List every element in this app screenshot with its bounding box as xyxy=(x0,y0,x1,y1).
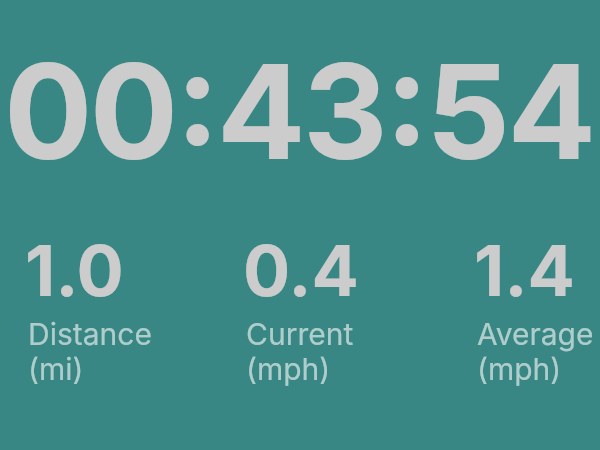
staticText: 1.4 xyxy=(474,228,575,313)
staticText: 00:43:54 xyxy=(4,32,594,191)
staticText: 1.0 xyxy=(25,228,124,313)
staticText: Distance xyxy=(28,316,152,352)
staticText: (mph) xyxy=(477,351,562,387)
staticText: 0.4 xyxy=(243,228,359,313)
staticText: Average xyxy=(477,316,594,352)
staticText: Current xyxy=(246,316,354,352)
staticText: (mph) xyxy=(246,351,331,387)
staticText: (mi) xyxy=(28,351,84,387)
